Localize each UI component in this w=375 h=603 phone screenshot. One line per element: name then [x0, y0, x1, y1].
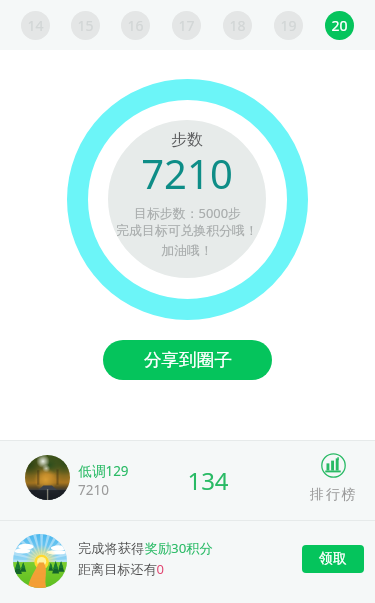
staticText: 领取: [319, 550, 347, 568]
button[interactable]: 分享到圈子: [103, 340, 272, 380]
button[interactable]: 15: [60, 0, 110, 50]
staticText: 16: [127, 16, 144, 35]
staticText: 排行榜: [310, 486, 357, 504]
staticText: 14: [27, 16, 44, 35]
button[interactable]: 17: [161, 0, 212, 50]
staticText: 15: [77, 16, 94, 35]
button[interactable]: 14: [10, 0, 60, 50]
staticText: 17: [178, 16, 195, 35]
staticText: 完成将获得奖励30积分: [78, 539, 213, 557]
staticText: 20: [331, 16, 348, 35]
button[interactable]: 领取: [302, 545, 364, 573]
staticText: 分享到圈子: [144, 349, 232, 371]
staticText: 完成目标可兑换积分哦！: [116, 223, 258, 239]
button[interactable]: 低调129: [0, 441, 375, 520]
button[interactable]: 20: [314, 0, 365, 50]
button[interactable]: 18: [212, 0, 263, 50]
staticText: 7210: [141, 146, 233, 200]
button[interactable]: 排行榜: [303, 450, 363, 506]
staticText: 134: [187, 464, 229, 497]
staticText: 低调129: [78, 462, 129, 480]
staticText: 距离目标还有0: [78, 560, 165, 578]
staticText: 19: [280, 16, 297, 35]
staticText: 步数: [171, 130, 203, 150]
staticText: 18: [229, 16, 246, 35]
staticText: 加油哦！: [161, 243, 213, 259]
staticText: 目标步数：5000步: [134, 204, 241, 222]
staticText: 7210: [78, 481, 109, 499]
button[interactable]: 19: [263, 0, 314, 50]
button[interactable]: 16: [110, 0, 161, 50]
